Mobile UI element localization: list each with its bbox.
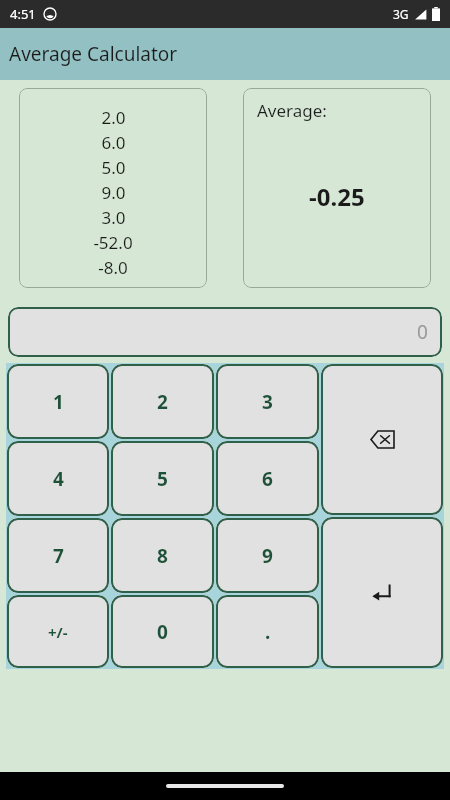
staticText: 5 [157, 466, 168, 492]
staticText: . [265, 619, 271, 645]
button[interactable]: +/- [7, 595, 109, 668]
staticText: 6 [262, 466, 273, 492]
button[interactable]: 2 [111, 364, 214, 439]
staticText: 3 [262, 389, 273, 415]
staticText: 4:51 [10, 5, 36, 23]
staticText: 2 [157, 389, 168, 415]
staticText: 9 [262, 543, 273, 569]
staticText: 0 [157, 619, 168, 645]
staticText: -0.25 [309, 180, 365, 213]
staticText: +/- [48, 622, 68, 642]
staticText: 3.0 [101, 206, 126, 231]
button[interactable]: Average: [243, 88, 431, 288]
button[interactable]: 4 [7, 441, 109, 516]
button[interactable]: 0 [111, 595, 214, 668]
staticText: 7 [53, 543, 64, 569]
button[interactable]: 2.0 [19, 88, 207, 288]
button[interactable]: 6 [216, 441, 319, 516]
button[interactable]: . [216, 595, 319, 668]
staticText: 3G [393, 6, 409, 22]
staticText: -52.0 [93, 231, 133, 256]
button[interactable]: 9 [216, 518, 319, 593]
staticText: 0 [417, 319, 428, 345]
staticText: 6.0 [101, 131, 126, 156]
button[interactable]: 7 [7, 518, 109, 593]
staticText: 2.0 [101, 106, 126, 131]
staticText: -8.0 [98, 256, 128, 281]
button[interactable]: 3 [216, 364, 319, 439]
staticText: Average Calculator [9, 41, 178, 67]
staticText: 4 [53, 466, 64, 492]
button[interactable]: 8 [111, 518, 214, 593]
button[interactable]: Backspace [321, 364, 443, 515]
button[interactable]: 1 [7, 364, 109, 439]
staticText: 1 [53, 389, 64, 415]
button[interactable]: Enter [321, 517, 443, 668]
button[interactable]: 5 [111, 441, 214, 516]
staticText: 33.0 [96, 281, 130, 288]
staticText: 5.0 [101, 156, 126, 181]
staticText: 8 [157, 543, 168, 569]
button[interactable]: 0 [8, 307, 442, 357]
staticText: 9.0 [101, 181, 126, 206]
staticText: Average: [257, 99, 327, 122]
